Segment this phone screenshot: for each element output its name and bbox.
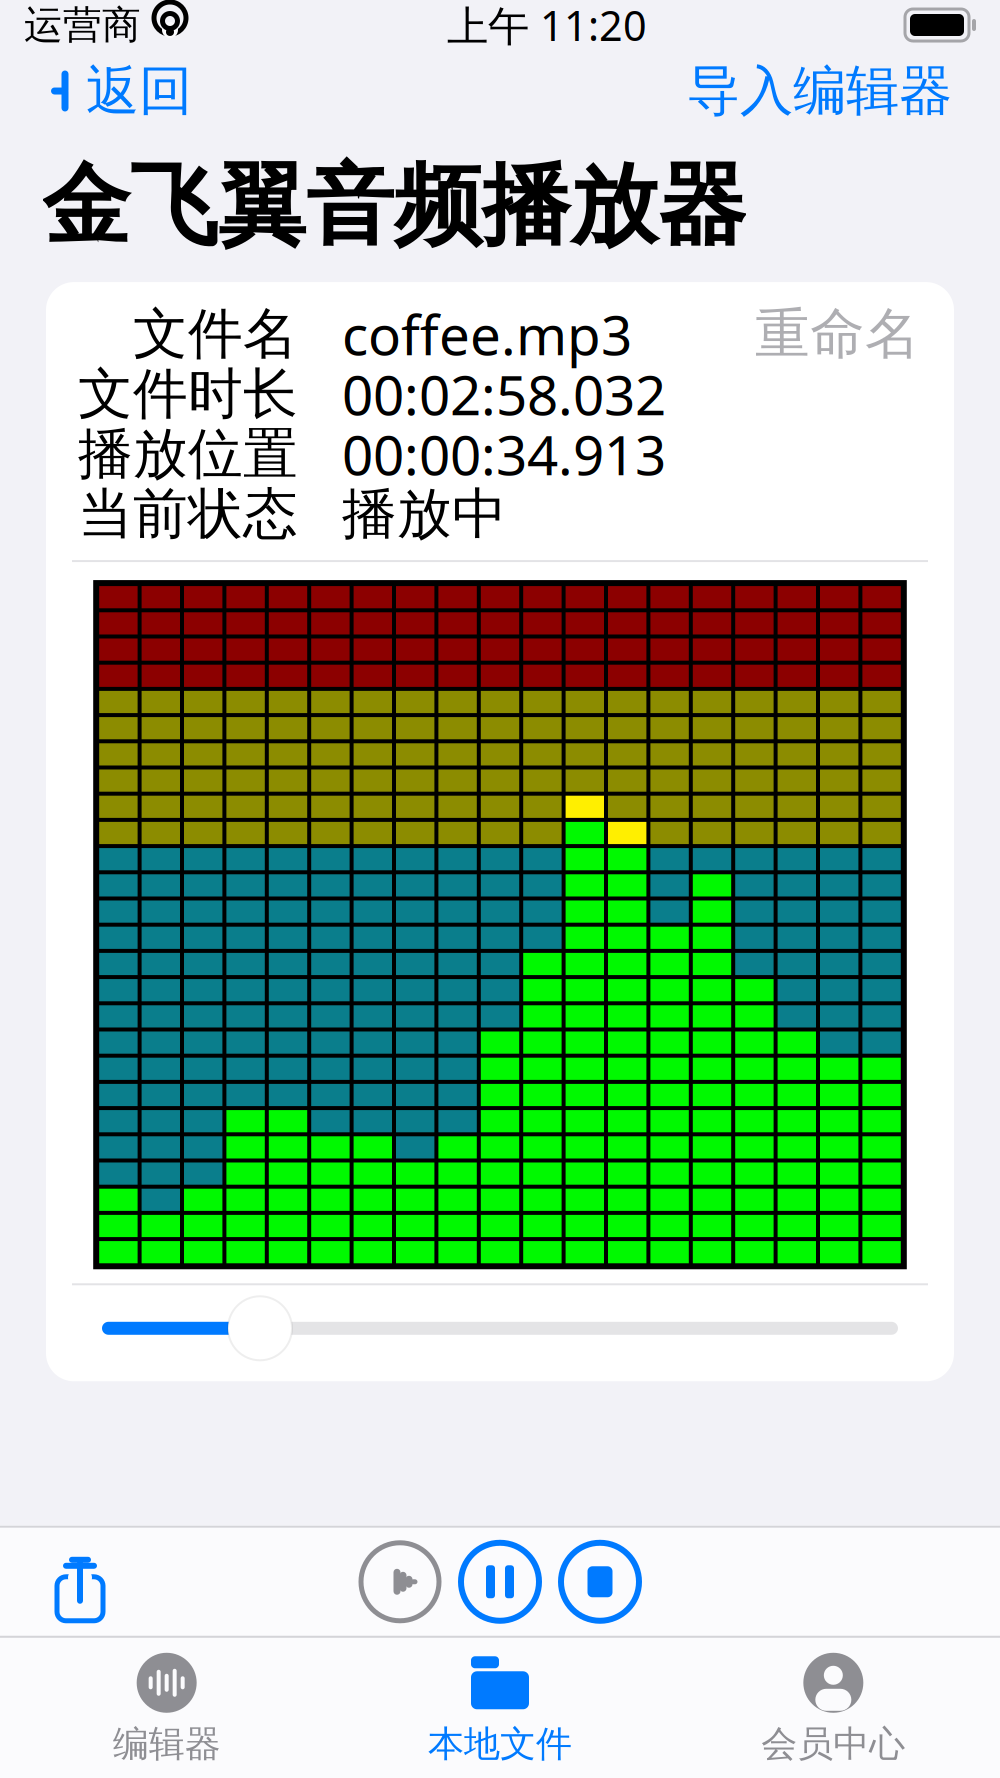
button[interactable]: 重命名 bbox=[747, 294, 928, 374]
button[interactable]: 会员中心 bbox=[667, 1638, 1000, 1778]
staticText: 运营商 bbox=[24, 1, 141, 49]
button[interactable]: 暂停 bbox=[461, 1543, 539, 1621]
staticText: 重命名 bbox=[755, 300, 920, 368]
staticText: 编辑器 bbox=[113, 1722, 221, 1766]
staticText: 本地文件 bbox=[428, 1722, 572, 1766]
staticText: 会员中心 bbox=[761, 1722, 905, 1766]
staticText: 文件名 bbox=[133, 300, 298, 368]
button[interactable]: 分享 bbox=[34, 1532, 126, 1632]
staticText: 播放中 bbox=[342, 480, 507, 548]
staticText: 返回 bbox=[86, 58, 192, 124]
staticText: 文件时长 bbox=[78, 360, 298, 428]
staticText: 当前状态 bbox=[78, 480, 298, 548]
button[interactable]: 本地文件 bbox=[333, 1638, 667, 1778]
button[interactable]: 返回 bbox=[38, 48, 202, 134]
staticText: 00:02:58.032 bbox=[342, 358, 666, 430]
button[interactable]: 播放 bbox=[361, 1543, 439, 1621]
staticText: 金飞翼音频播放器 bbox=[42, 152, 746, 260]
staticText: 播放位置 bbox=[78, 420, 298, 488]
staticText: 上午 11:20 bbox=[447, 0, 647, 52]
button[interactable]: 导入编辑器 bbox=[677, 48, 962, 134]
staticText: 导入编辑器 bbox=[687, 58, 952, 124]
button[interactable]: 编辑器 bbox=[0, 1638, 333, 1778]
staticText: coffee.mp3 bbox=[342, 298, 632, 370]
button[interactable]: 停止 bbox=[561, 1543, 639, 1621]
staticText: 00:00:34.913 bbox=[342, 418, 666, 490]
